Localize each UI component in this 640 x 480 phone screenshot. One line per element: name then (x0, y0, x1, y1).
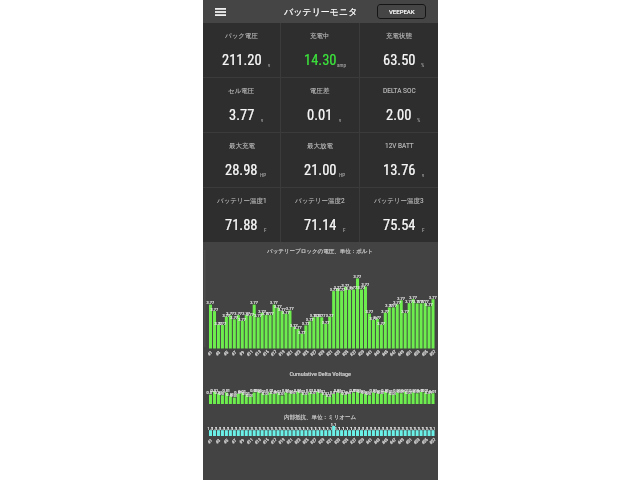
button[interactable]: 充電中 (281, 23, 359, 77)
button[interactable]: 12V BATT (360, 133, 438, 187)
button[interactable]: バッテリー温度1 (203, 188, 280, 242)
staticText: % (421, 62, 425, 68)
staticText: v (261, 117, 264, 123)
staticText: 充電中 (310, 32, 330, 40)
staticText: v (339, 117, 342, 123)
staticText: 71.14 (304, 217, 337, 234)
staticText: 充電状態 (386, 32, 412, 40)
staticText: DELTA SOC (383, 87, 416, 95)
staticText: HP (260, 172, 267, 178)
staticText: 最大放電 (307, 142, 333, 150)
staticText: バッテリー温度3 (374, 197, 424, 205)
button[interactable]: パック電圧 (203, 23, 280, 77)
staticText: 14.30 (304, 52, 337, 69)
staticText: v (422, 172, 425, 178)
staticText: F (264, 227, 267, 233)
staticText: v (268, 62, 271, 68)
staticText: amp (337, 62, 346, 68)
staticText: 21.00 (304, 162, 337, 179)
staticText: パック電圧 (225, 32, 258, 40)
staticText: 211.20 (222, 52, 262, 69)
button[interactable]: セル電圧 (203, 78, 280, 132)
staticText: バッテリーモニタ (284, 6, 358, 17)
staticText: VEEPEAK (389, 8, 415, 15)
staticText: 0.01 (307, 107, 333, 124)
staticText: バッテリー温度2 (295, 197, 345, 205)
staticText: F (422, 227, 425, 233)
staticText: セル電圧 (228, 87, 255, 95)
staticText: 12V BATT (385, 142, 414, 150)
button[interactable]: DELTA SOC (360, 78, 438, 132)
button[interactable]: 充電状態 (360, 23, 438, 77)
staticText: F (343, 227, 346, 233)
staticText: 71.88 (225, 217, 258, 234)
button[interactable]: 電圧差 (281, 78, 359, 132)
staticText: 最大充電 (229, 142, 255, 150)
button[interactable]: VEEPEAK (377, 4, 426, 19)
button[interactable]: バッテリー温度3 (360, 188, 438, 242)
staticText: 75.54 (383, 217, 416, 234)
staticText: 13.76 (383, 162, 416, 179)
staticText: 電圧差 (310, 87, 330, 95)
staticText: 3.77 (229, 107, 255, 124)
staticText: HP (339, 172, 346, 178)
staticText: 63.50 (383, 52, 416, 69)
button[interactable]: バッテリー温度2 (281, 188, 359, 242)
staticText: 28.98 (225, 162, 258, 179)
staticText: バッテリー温度1 (217, 197, 267, 205)
button[interactable]: 最大放電 (281, 133, 359, 187)
button[interactable]: 最大充電 (203, 133, 280, 187)
staticText: % (417, 117, 421, 123)
button[interactable]: Open navigation menu (203, 0, 226, 23)
staticText: 2.00 (386, 107, 412, 124)
